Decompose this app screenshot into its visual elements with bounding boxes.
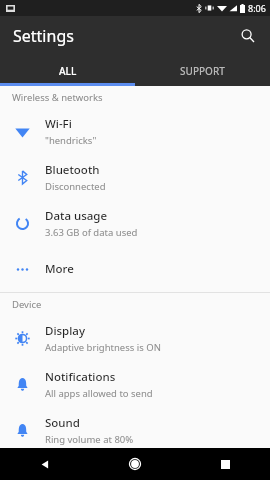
button[interactable]: Back <box>0 448 90 480</box>
staticText: Data usage <box>45 208 108 224</box>
button[interactable]: Search <box>231 19 265 53</box>
button[interactable]: Home <box>90 448 180 480</box>
button[interactable]: ALL <box>0 56 135 86</box>
staticText: All apps allowed to send <box>45 387 153 400</box>
staticText: Wi-Fi <box>45 116 72 132</box>
button[interactable]: Data usage <box>0 200 270 246</box>
staticText: 8:06 <box>248 2 266 14</box>
staticText: Adaptive brightness is ON <box>45 341 161 354</box>
staticText: Settings <box>13 25 74 47</box>
staticText: Display <box>45 323 85 339</box>
button[interactable]: Sound <box>0 407 270 453</box>
staticText: Disconnected <box>45 180 106 193</box>
button[interactable]: SUPPORT <box>135 56 270 86</box>
staticText: ALL <box>59 64 77 78</box>
staticText: More <box>45 261 74 277</box>
button[interactable]: Display <box>0 315 270 361</box>
button[interactable]: Bluetooth <box>0 154 270 200</box>
button[interactable]: Notifications <box>0 361 270 407</box>
staticText: Bluetooth <box>45 162 100 178</box>
staticText: Device <box>12 298 42 311</box>
staticText: Ring volume at 80% <box>45 433 134 446</box>
staticText: SUPPORT <box>180 64 225 78</box>
button[interactable]: Wi-Fi <box>0 108 270 154</box>
staticText: Wireless & networks <box>12 91 103 104</box>
staticText: "hendricks" <box>45 134 97 147</box>
staticText: Notifications <box>45 369 116 385</box>
button[interactable]: Recent apps <box>180 448 270 480</box>
staticText: Sound <box>45 415 80 431</box>
button[interactable]: More <box>0 246 270 292</box>
staticText: 3.63 GB of data used <box>45 226 138 239</box>
